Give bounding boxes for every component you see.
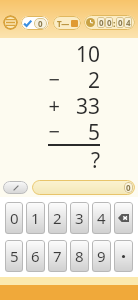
staticText: 2 [53,208,62,228]
staticText: 10 [75,40,100,66]
button[interactable]: 3 [70,202,89,234]
button[interactable]: 0 [86,15,133,30]
staticText: 0 [10,208,19,228]
staticText: 4 [97,208,106,228]
button[interactable] [114,240,133,272]
button[interactable]: 9 [92,240,111,272]
button[interactable]: Toggle input mode [3,181,28,194]
button[interactable]: Backspace [114,202,133,234]
staticText: 33 [75,92,100,118]
button[interactable]: 1 [26,202,45,234]
button[interactable]: Menu [3,15,18,30]
staticText: 0 [99,17,104,28]
staticText: − [48,118,60,144]
button[interactable]: 6 [26,240,45,272]
staticText: 6 [31,246,40,266]
staticText: 8 [75,246,84,266]
staticText: 0 [38,18,43,29]
button[interactable]: 8 [70,240,89,272]
button[interactable]: 7 [48,240,67,272]
button[interactable]: 0 [5,202,23,234]
staticText: 1 [31,208,40,228]
staticText: 3 [75,208,84,228]
staticText: 4 [126,17,131,28]
button[interactable]: 4 [92,202,111,234]
staticText: 7 [53,246,62,266]
button[interactable]: 0 [23,16,47,30]
staticText: + [48,92,60,118]
staticText: − [48,66,60,92]
staticText: 0 [126,182,131,193]
staticText: 0 [107,17,112,28]
button[interactable]: 2 [48,202,67,234]
staticText: T— [57,18,70,29]
staticText: ? [90,146,100,175]
staticText: 0 [118,17,123,28]
button[interactable]: T— [53,16,81,30]
staticText: 5 [10,246,19,266]
staticText: 2 [87,66,100,92]
button[interactable]: 5 [5,240,23,272]
button[interactable]: 0 [32,180,135,195]
staticText: : [113,17,116,29]
staticText: 9 [97,246,106,266]
staticText: 5 [87,118,100,144]
